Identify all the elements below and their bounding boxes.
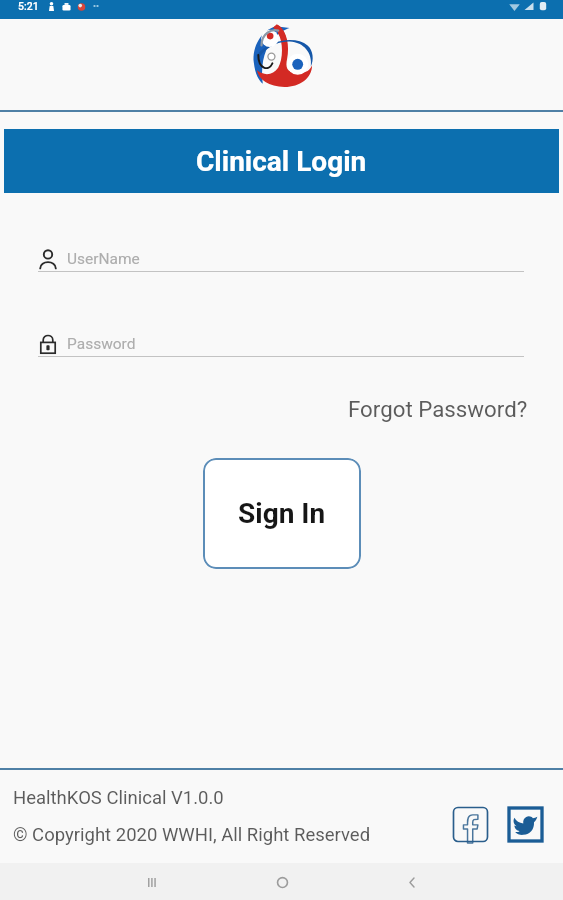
staticText: Sign In <box>238 497 326 530</box>
button[interactable]: Forgot Password? <box>342 394 534 424</box>
button[interactable]: Recent apps <box>134 865 168 899</box>
staticText: UserName <box>67 250 140 268</box>
staticText: Forgot Password? <box>348 396 528 422</box>
button[interactable]: Clinical Login <box>4 129 559 193</box>
staticText: © Copyright 2020 WWHI, All Right Reserve… <box>13 824 371 846</box>
staticText: 5:21 <box>18 0 39 12</box>
button[interactable]: UserName <box>38 249 524 272</box>
button[interactable]: Facebook <box>452 806 489 843</box>
staticText: Clinical Login <box>196 145 367 178</box>
button[interactable]: Back <box>395 865 429 899</box>
staticText: HealthKOS Clinical V1.0.0 <box>13 787 224 809</box>
button[interactable]: Sign In <box>203 458 361 569</box>
staticText: •• <box>93 1 100 12</box>
button[interactable]: Home <box>265 865 299 899</box>
button[interactable]: Password <box>38 334 524 357</box>
button[interactable]: Twitter <box>507 806 544 843</box>
staticText: Password <box>67 335 136 353</box>
